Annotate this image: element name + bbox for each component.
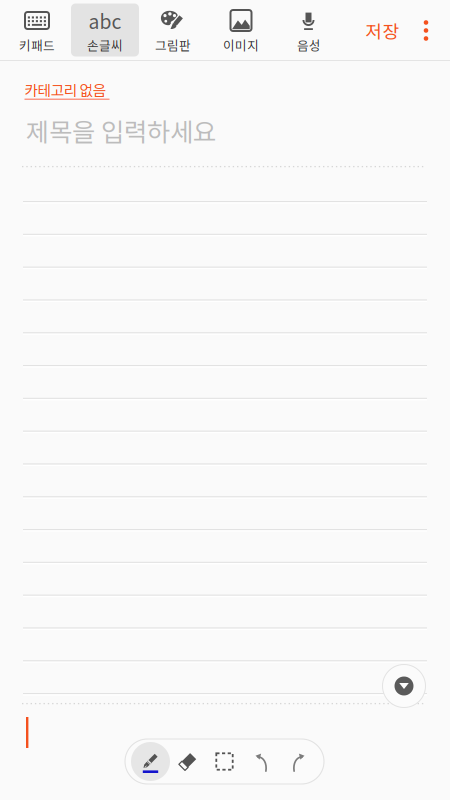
staticText: 손글씨 [87,36,123,54]
staticText: 키패드 [19,36,55,54]
button[interactable]: 키패드 [3,0,71,61]
staticText: 저장 [365,17,399,44]
button[interactable]: Redo [280,739,317,784]
staticText: 음성 [297,36,321,54]
button[interactable]: abc [71,0,139,61]
button[interactable]: 이미지 [207,0,275,61]
button[interactable]: 저장 [359,0,406,60]
staticText: 제목을 입력하세요 [26,112,216,149]
button[interactable]: Undo [243,739,280,784]
staticText: 이미지 [223,36,259,54]
staticText: abc [88,6,121,34]
staticText: 그림판 [155,36,191,54]
button[interactable]: Pen [132,739,169,784]
button[interactable]: 그림판 [139,0,207,61]
button[interactable]: Select [206,739,243,784]
button[interactable]: More options [406,0,446,60]
staticText: 카테고리 없음 [24,79,105,100]
button[interactable]: 음성 [275,0,343,61]
button[interactable]: Scroll to bottom [382,664,426,708]
button[interactable]: 카테고리 없음 [24,80,112,102]
button[interactable]: Eraser [169,739,206,784]
